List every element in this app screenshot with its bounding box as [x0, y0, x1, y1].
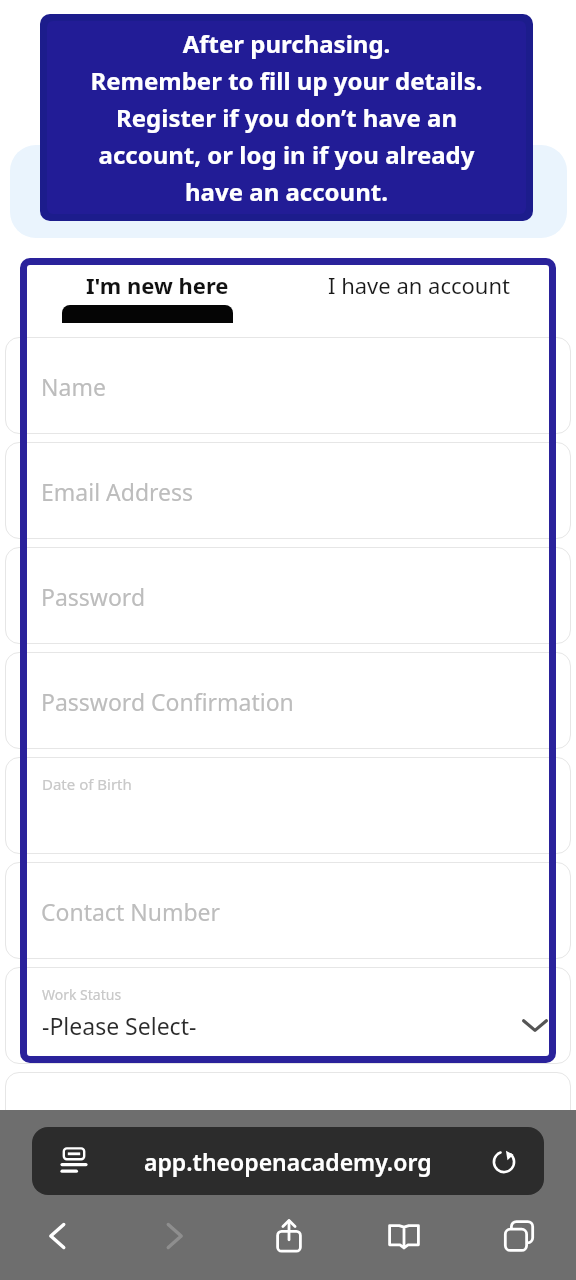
- button[interactable]: [5, 442, 571, 539]
- staticText: Contact Number: [41, 896, 221, 927]
- staticText: Password: [41, 581, 146, 612]
- button[interactable]: Page settings: [48, 1135, 100, 1187]
- button[interactable]: [5, 862, 571, 959]
- staticText: I'm new here: [86, 270, 229, 300]
- button[interactable]: [5, 1072, 571, 1169]
- staticText: Password Confirmation: [41, 686, 294, 717]
- staticText: Work Status: [42, 985, 122, 1004]
- button[interactable]: I have an account: [288, 265, 549, 323]
- staticText: app.theopenacademy.org: [144, 1146, 432, 1177]
- staticText: I have an account: [328, 270, 510, 300]
- staticText: After purchasing. Remember to fill up yo…: [47, 27, 526, 208]
- staticText: Email Address: [41, 476, 194, 507]
- button[interactable]: Open work status dropdown: [505, 995, 565, 1055]
- button[interactable]: Forward: [116, 1205, 231, 1267]
- button[interactable]: Back: [0, 1205, 116, 1267]
- button[interactable]: Share: [231, 1205, 346, 1267]
- button[interactable]: I'm new here: [27, 265, 288, 323]
- staticText: Date of Birth: [42, 774, 132, 794]
- staticText: Name: [41, 371, 106, 402]
- button[interactable]: [5, 547, 571, 644]
- button[interactable]: Tabs: [461, 1205, 576, 1267]
- button[interactable]: Reload page: [478, 1135, 530, 1187]
- staticText: -Please Select-: [42, 1010, 197, 1041]
- button[interactable]: [5, 652, 571, 749]
- button[interactable]: [5, 337, 571, 434]
- button[interactable]: [5, 967, 571, 1064]
- button[interactable]: [5, 757, 571, 854]
- button[interactable]: Bookmarks: [346, 1205, 461, 1267]
- button[interactable]: app.theopenacademy.org: [32, 1127, 544, 1195]
